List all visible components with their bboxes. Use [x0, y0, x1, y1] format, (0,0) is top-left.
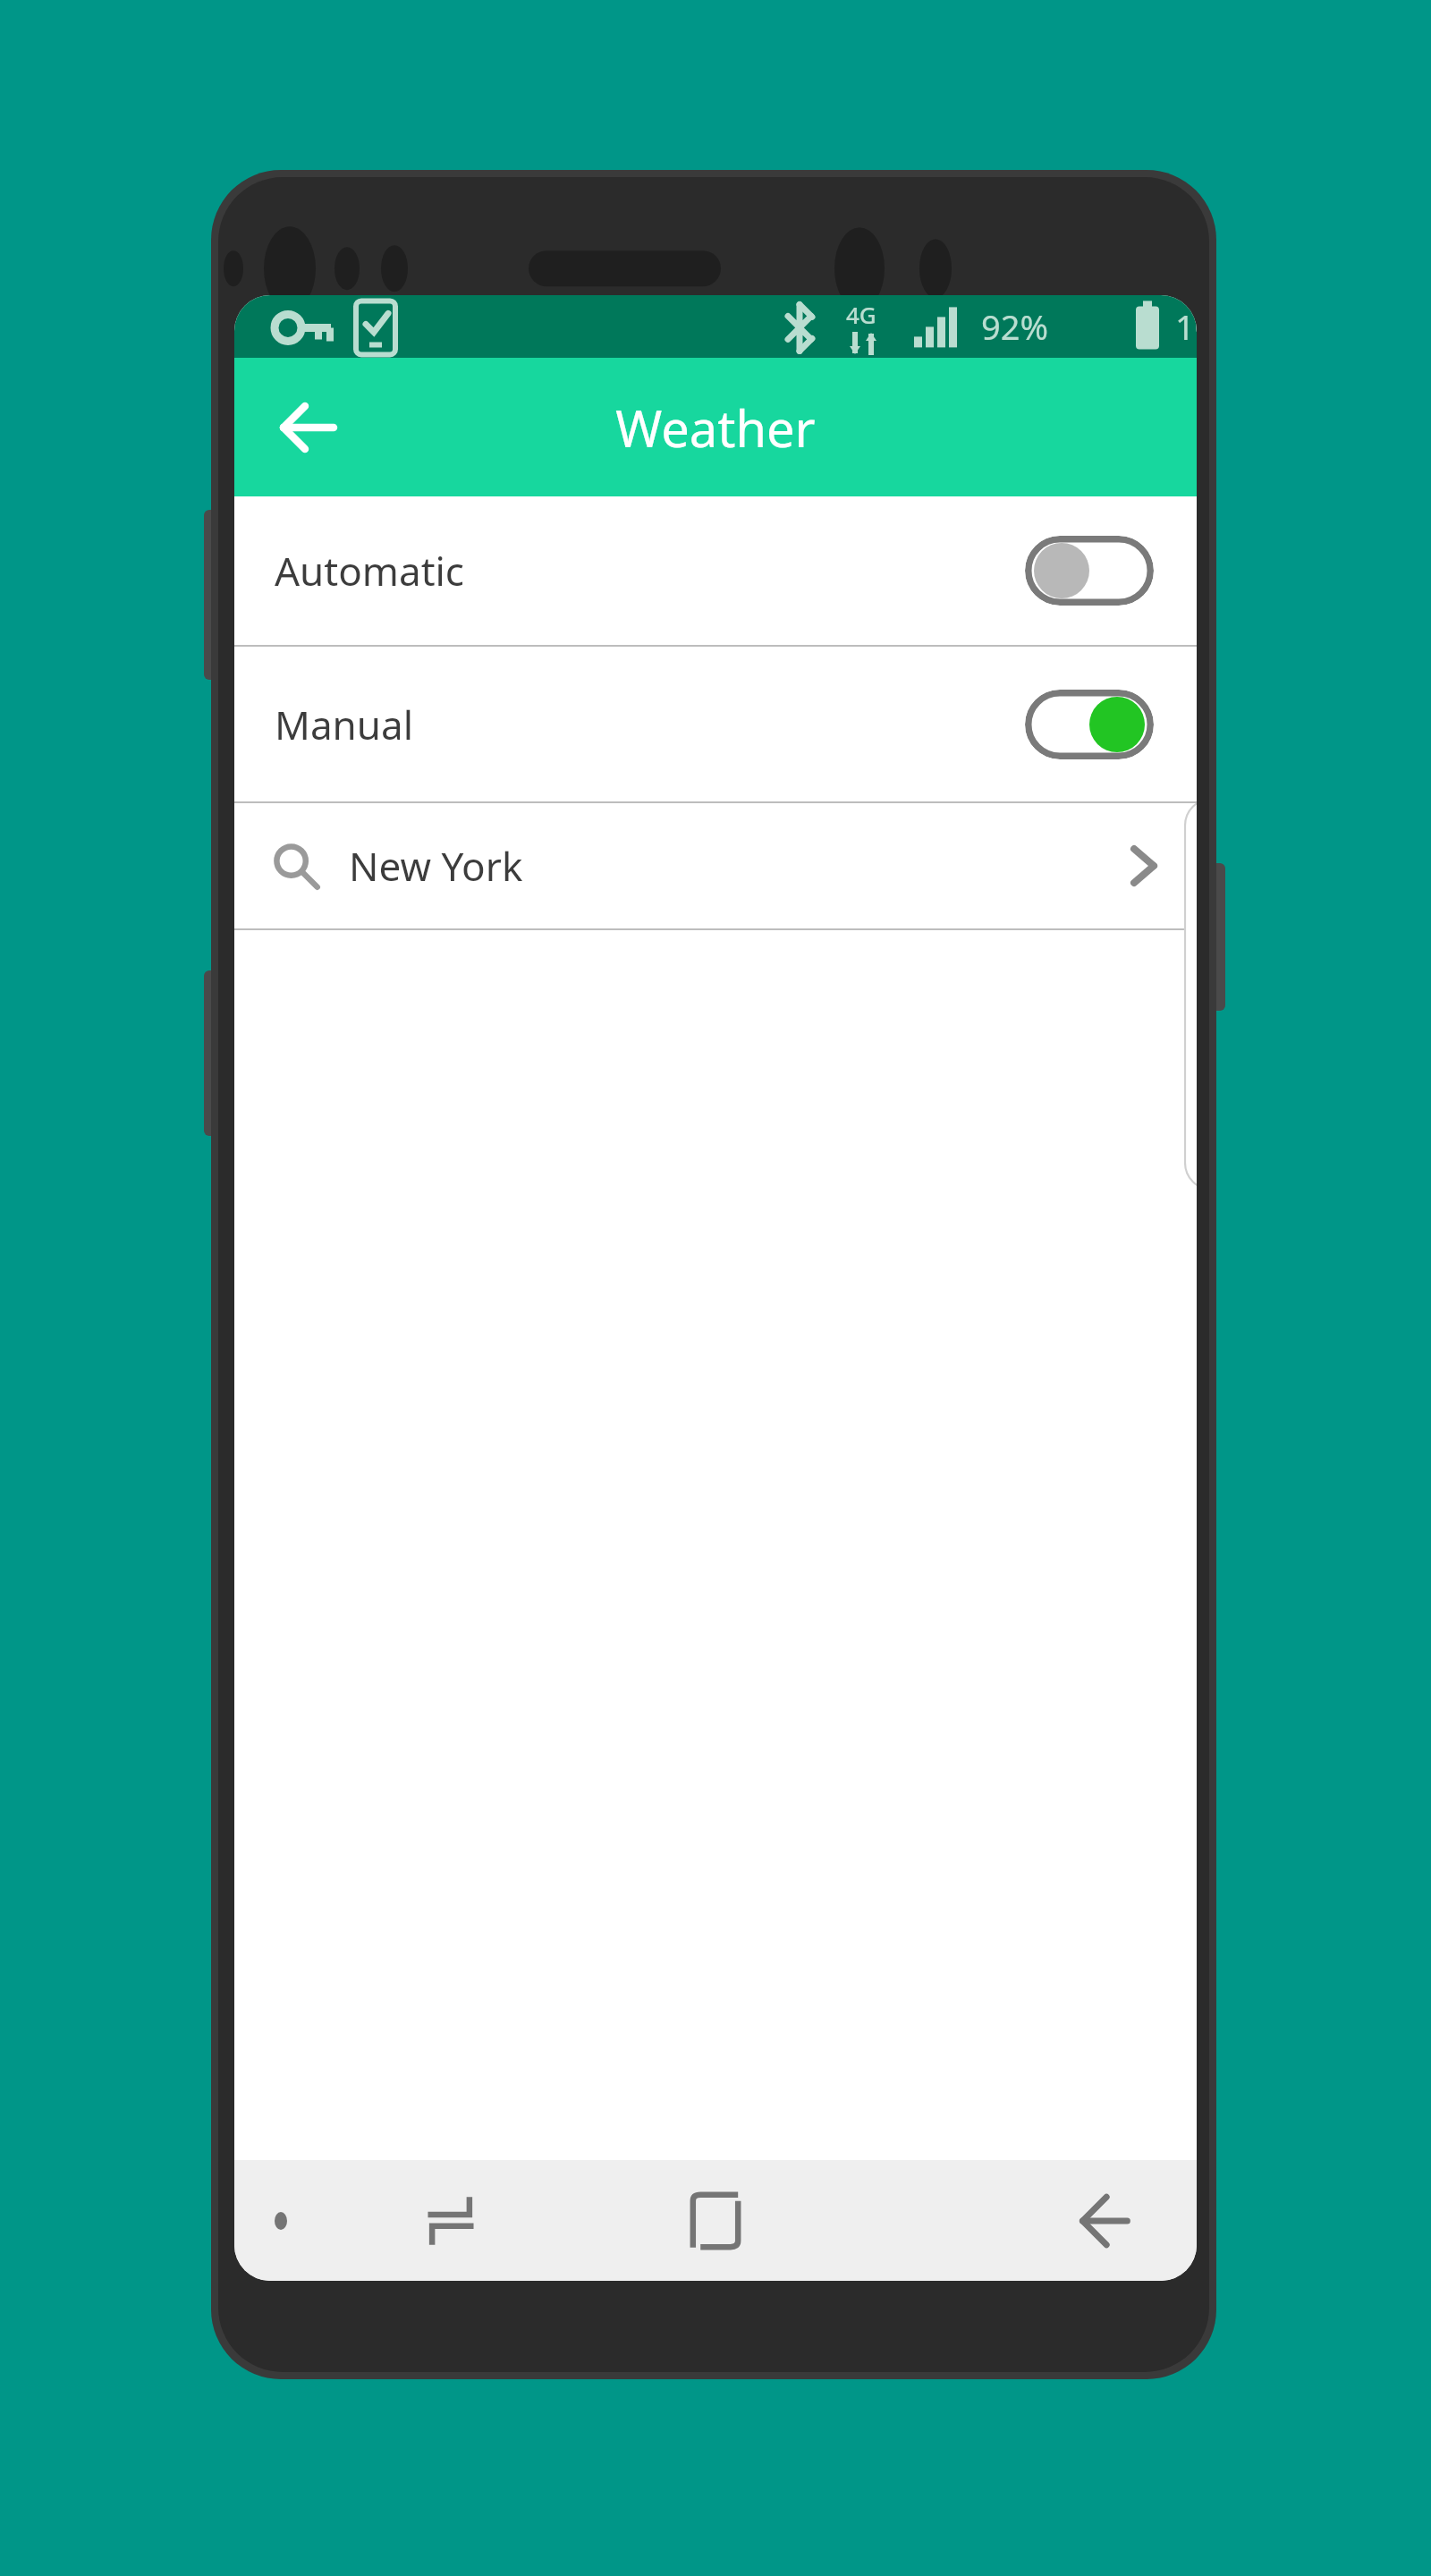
staticText: New York — [349, 839, 1129, 893]
button[interactable]: On — [1025, 690, 1154, 759]
staticText: 92% — [981, 303, 1049, 350]
button[interactable]: Back — [268, 388, 347, 467]
staticText: Automatic — [275, 544, 1025, 597]
button[interactable]: Home — [669, 2174, 762, 2267]
staticText: Weather — [615, 394, 816, 462]
button[interactable]: Assistant — [261, 2201, 301, 2241]
button[interactable]: Back — [1061, 2176, 1150, 2266]
button[interactable]: Recents — [408, 2178, 494, 2264]
button[interactable]: Automatic — [234, 496, 1197, 645]
staticText: 4G — [846, 299, 876, 330]
staticText: Manual — [275, 698, 1025, 751]
staticText: 10:28 — [1175, 303, 1197, 350]
button[interactable]: New York — [234, 803, 1197, 928]
button[interactable]: Off — [1025, 536, 1154, 606]
button[interactable]: Manual — [234, 647, 1197, 801]
